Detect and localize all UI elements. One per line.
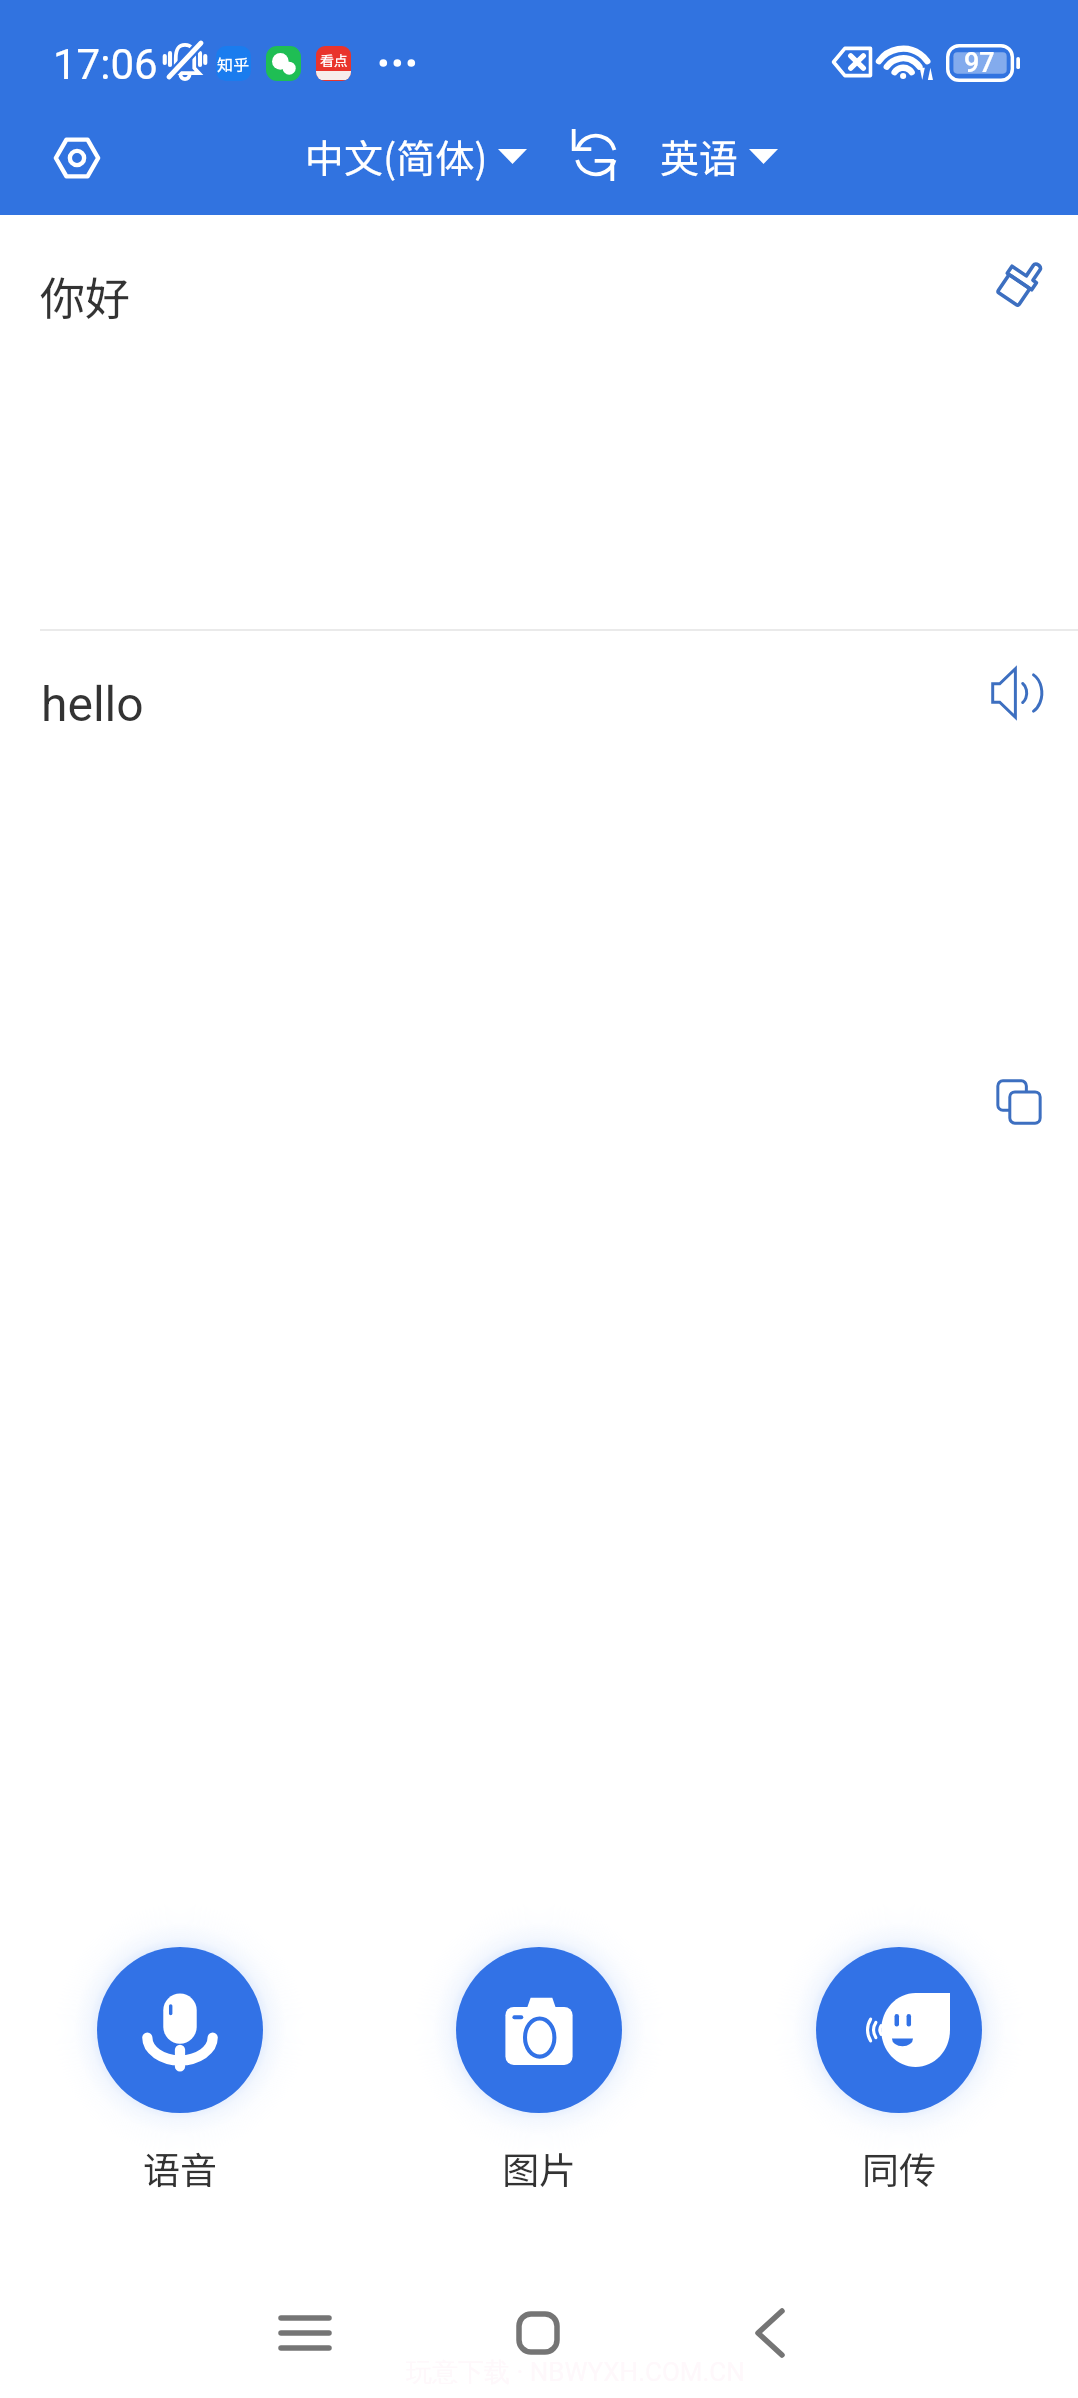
button[interactable]: 语音 (50, 1906, 310, 2226)
button[interactable]: 英语 (648, 114, 790, 198)
button[interactable]: 同传 (769, 1906, 1029, 2226)
staticText: 语音 (143, 2141, 217, 2195)
staticText: 你好 (40, 263, 131, 328)
staticText: 97 (964, 47, 995, 79)
button[interactable]: Home (483, 2278, 593, 2388)
staticText: 同传 (862, 2141, 936, 2195)
staticText: 17:06 (53, 40, 158, 89)
button[interactable]: Back (715, 2278, 825, 2388)
staticText: 英语 (660, 128, 739, 184)
button[interactable]: 中文(简体) (293, 114, 539, 198)
button[interactable]: Recent apps (250, 2278, 360, 2388)
button[interactable]: Copy text (974, 1057, 1064, 1147)
button[interactable]: 图片 (409, 1906, 669, 2226)
staticText: 中文(简体) (305, 128, 488, 184)
button[interactable]: Swap languages (565, 126, 621, 184)
button[interactable]: Play pronunciation (972, 648, 1062, 738)
staticText: 看点 (320, 50, 348, 70)
button[interactable]: Settings (38, 119, 116, 197)
staticText: 图片 (502, 2141, 576, 2195)
staticText: hello (41, 676, 144, 732)
staticText: 知乎 (217, 52, 250, 75)
button[interactable]: Clear text (973, 234, 1065, 326)
